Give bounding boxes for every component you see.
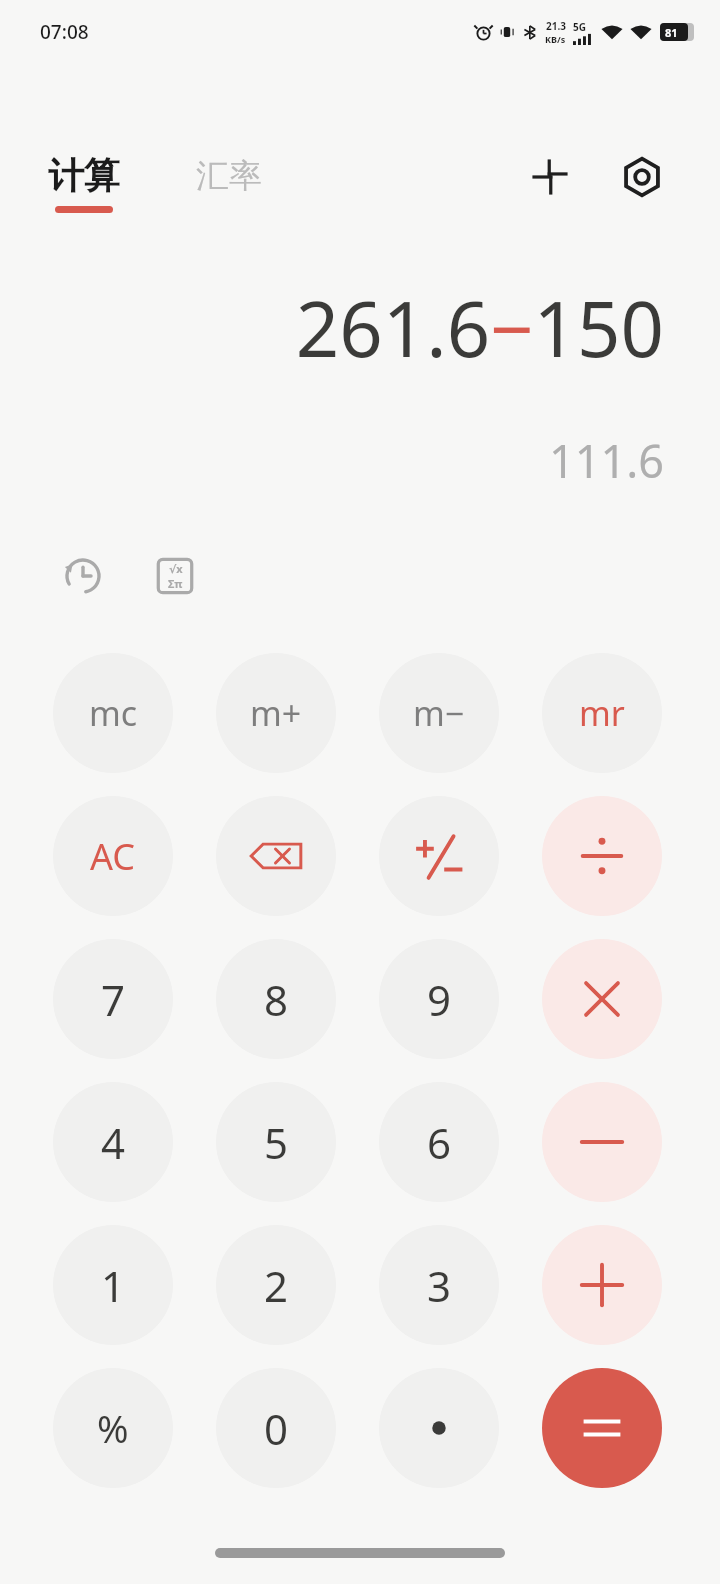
- button[interactable]: m−: [379, 653, 499, 773]
- button[interactable]: Divide: [542, 796, 662, 916]
- staticText: √x: [169, 561, 183, 576]
- button[interactable]: AC: [53, 796, 173, 916]
- button[interactable]: 1: [53, 1225, 173, 1345]
- button[interactable]: Backspace: [216, 796, 336, 916]
- button[interactable]: m+: [216, 653, 336, 773]
- button[interactable]: 汇率: [196, 155, 262, 197]
- button[interactable]: Add: [542, 1225, 662, 1345]
- staticText: m+: [250, 690, 302, 736]
- button[interactable]: Subtract: [542, 1082, 662, 1202]
- button[interactable]: 0: [216, 1368, 336, 1488]
- button[interactable]: History: [52, 545, 114, 607]
- button[interactable]: %: [53, 1368, 173, 1488]
- staticText: 计算: [48, 153, 120, 198]
- staticText: m−: [413, 690, 465, 736]
- button[interactable]: mr: [542, 653, 662, 773]
- button[interactable]: 8: [216, 939, 336, 1059]
- button[interactable]: Scientific mode: [144, 545, 206, 607]
- button[interactable]: Decimal point: [379, 1368, 499, 1488]
- staticText: 5: [264, 1114, 289, 1171]
- staticText: %: [97, 1402, 129, 1454]
- staticText: 3: [427, 1257, 452, 1314]
- staticText: 4: [101, 1114, 126, 1171]
- button[interactable]: Multiply: [542, 939, 662, 1059]
- button[interactable]: Unit converter: [518, 145, 582, 209]
- staticText: 111.6: [548, 430, 664, 491]
- button[interactable]: 6: [379, 1082, 499, 1202]
- staticText: mc: [89, 690, 138, 736]
- staticText: 8: [264, 971, 289, 1028]
- staticText: 21.3: [546, 19, 566, 33]
- button[interactable]: 5: [216, 1082, 336, 1202]
- staticText: 6: [427, 1114, 452, 1171]
- button[interactable]: 9: [379, 939, 499, 1059]
- staticText: 7: [101, 971, 126, 1028]
- button[interactable]: 3: [379, 1225, 499, 1345]
- staticText: 9: [427, 971, 452, 1028]
- button[interactable]: 4: [53, 1082, 173, 1202]
- button[interactable]: mc: [53, 653, 173, 773]
- staticText: 1: [101, 1257, 126, 1314]
- button[interactable]: 2: [216, 1225, 336, 1345]
- button[interactable]: Equals: [542, 1368, 662, 1488]
- staticText: AC: [90, 832, 136, 881]
- staticText: 81: [665, 25, 678, 40]
- button[interactable]: 7: [53, 939, 173, 1059]
- button[interactable]: Settings: [610, 145, 674, 209]
- staticText: 2: [264, 1257, 289, 1314]
- staticText: 0: [264, 1400, 289, 1457]
- button[interactable]: Plus minus: [379, 796, 499, 916]
- staticText: mr: [579, 690, 625, 736]
- staticText: 261.6−150: [295, 276, 664, 380]
- staticText: KB/s: [545, 33, 566, 45]
- button[interactable]: 计算: [48, 153, 120, 213]
- staticText: 07:08: [40, 19, 89, 45]
- staticText: 5G: [573, 20, 586, 34]
- staticText: Σπ: [168, 576, 183, 591]
